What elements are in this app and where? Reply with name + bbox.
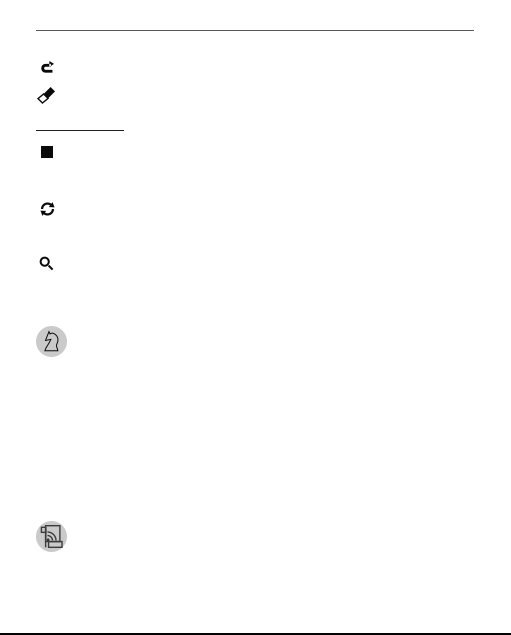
button[interactable]: Refresh <box>40 202 55 216</box>
button[interactable]: Search <box>39 256 55 271</box>
button[interactable]: Redo move <box>41 61 54 74</box>
button[interactable]: Clear board <box>38 86 55 103</box>
